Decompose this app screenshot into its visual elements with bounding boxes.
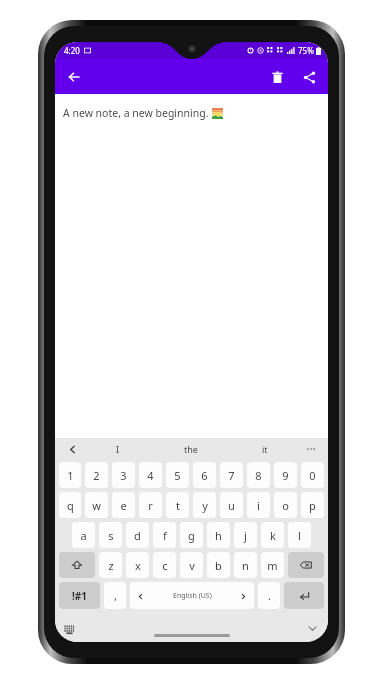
staticText: t [176,498,180,513]
staticText: e [120,498,127,513]
button[interactable]: 6 [193,462,216,488]
staticText: . [268,588,271,603]
button[interactable]: f [153,522,176,548]
staticText: m [267,558,278,573]
button[interactable]: 8 [247,462,270,488]
staticText: r [148,498,153,513]
staticText: p [309,498,316,513]
button[interactable]: e [112,492,135,518]
button[interactable]: w [85,492,108,518]
button[interactable]: Backspace [288,552,324,578]
staticText: 6 [201,468,208,483]
staticText: q [67,498,74,513]
button[interactable]: o [274,492,297,518]
button[interactable]: . [258,582,280,609]
button[interactable]: it [228,438,302,460]
staticText: 0 [309,468,316,483]
staticText: n [242,558,249,573]
button[interactable]: k [261,522,284,548]
button[interactable]: Hide keyboard [302,618,322,638]
staticText: b [215,558,222,573]
button[interactable]: 5 [166,462,189,488]
button[interactable]: z [99,552,122,578]
button[interactable]: r [139,492,162,518]
button[interactable]: Enter [284,582,324,609]
button[interactable]: b [207,552,230,578]
staticText: !#1 [72,589,87,603]
staticText: , [114,588,117,603]
staticText: 8 [255,468,262,483]
button[interactable]: Space, English (US) [130,582,254,609]
button[interactable]: Delete [262,62,292,92]
button[interactable]: 9 [274,462,297,488]
staticText: z [108,558,114,573]
button[interactable]: 7 [220,462,243,488]
staticText: 1 [67,468,74,483]
staticText: g [188,528,195,543]
staticText: x [135,558,141,573]
button[interactable]: i [247,492,270,518]
button[interactable]: h [207,522,230,548]
button[interactable]: 4 [139,462,162,488]
staticText: A new note, a new beginning. [63,106,212,120]
button[interactable]: n [234,552,257,578]
button[interactable]: y [193,492,216,518]
button[interactable]: p [301,492,324,518]
button[interactable]: I [81,438,154,460]
button[interactable]: x [126,552,149,578]
button[interactable]: a [72,522,95,548]
button[interactable]: v [180,552,203,578]
staticText: c [162,558,168,573]
staticText: 9 [282,468,289,483]
button[interactable]: m [261,552,284,578]
button[interactable]: q [59,492,81,518]
staticText: 4:20 [64,45,80,56]
staticText: 75% [298,45,314,56]
staticText: English (US) [173,591,212,601]
staticText: d [134,528,141,543]
button[interactable]: More options [302,440,320,458]
button[interactable]: 2 [85,462,108,488]
staticText: the [184,443,198,455]
staticText: v [189,558,195,573]
button[interactable]: c [153,552,176,578]
button[interactable]: Back [59,62,89,92]
staticText: 3 [120,468,127,483]
staticText: a [80,528,87,543]
staticText: u [228,498,235,513]
button[interactable]: !#1 [59,582,100,609]
button[interactable]: 1 [59,462,81,488]
staticText: i [257,498,260,513]
button[interactable]: Previous [63,440,81,458]
staticText: h [215,528,222,543]
staticText: I [116,443,120,455]
button[interactable]: Switch keyboard [59,618,79,638]
staticText: k [270,528,276,543]
staticText: y [202,498,208,513]
staticText: o [282,498,289,513]
button[interactable]: d [126,522,149,548]
staticText: l [298,528,301,543]
button[interactable]: u [220,492,243,518]
staticText: 2 [93,468,100,483]
staticText: f [163,528,167,543]
button[interactable]: j [234,522,257,548]
staticText: 4 [147,468,154,483]
button[interactable]: 0 [301,462,324,488]
staticText: j [244,528,247,543]
button[interactable]: the [154,438,228,460]
staticText: 5 [174,468,181,483]
button[interactable]: l [288,522,311,548]
staticText: 7 [228,468,235,483]
staticText: w [92,498,101,513]
button[interactable]: 3 [112,462,135,488]
button[interactable]: Shift [59,552,95,578]
staticText: it [262,443,268,455]
button[interactable]: g [180,522,203,548]
button[interactable]: s [99,522,122,548]
button[interactable]: , [104,582,126,609]
staticText: s [108,528,114,543]
button[interactable]: Share [294,62,324,92]
button[interactable]: t [166,492,189,518]
